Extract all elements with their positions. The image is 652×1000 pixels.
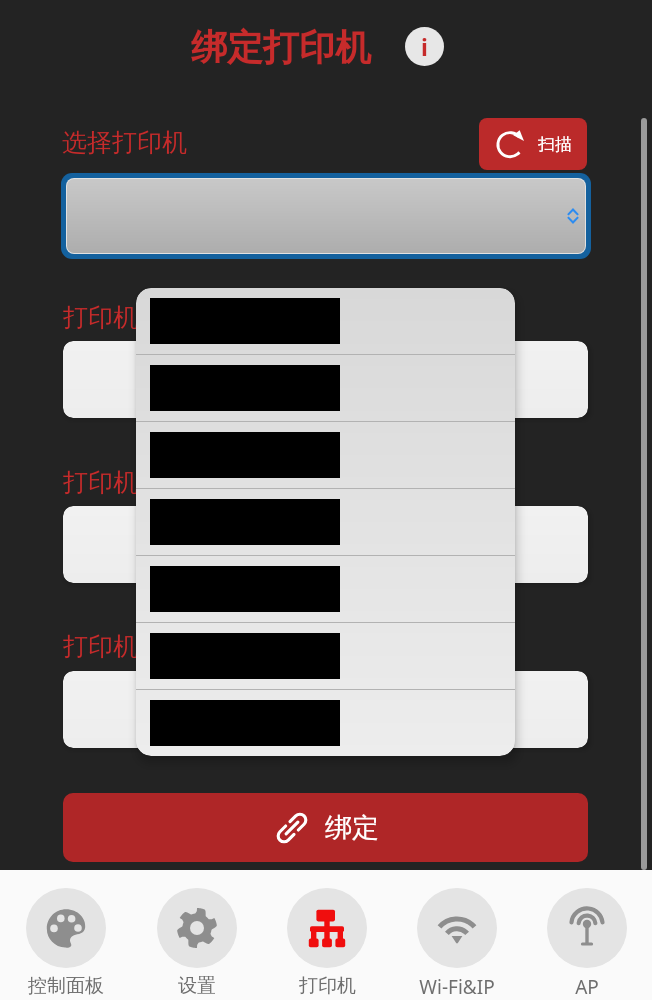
button[interactable]: [63, 506, 588, 583]
button[interactable]: [136, 556, 515, 623]
button[interactable]: Info: [405, 27, 444, 66]
staticText: Wi-Fi&IP: [419, 974, 495, 1000]
staticText: 打印机名称: [63, 302, 188, 333]
staticText: 绑定打印机: [191, 25, 371, 70]
staticText: 绑定: [325, 811, 379, 845]
staticText: 打印机位置: [63, 631, 188, 662]
button[interactable]: 扫描: [479, 118, 587, 170]
button[interactable]: 打印机: [262, 870, 392, 998]
button[interactable]: 控制面板: [0, 870, 131, 998]
button[interactable]: 设置: [131, 870, 262, 998]
button[interactable]: [136, 489, 515, 556]
button[interactable]: [136, 623, 515, 690]
button[interactable]: [136, 288, 515, 355]
staticText: AP: [575, 974, 599, 1000]
staticText: i: [421, 31, 428, 62]
button[interactable]: Wi-Fi&IP: [392, 870, 522, 1000]
button[interactable]: [67, 179, 585, 253]
staticText: 设置: [178, 974, 216, 998]
button[interactable]: [63, 341, 588, 418]
button[interactable]: [136, 422, 515, 489]
button[interactable]: [136, 355, 515, 422]
staticText: 控制面板: [28, 974, 104, 998]
staticText: 扫描: [538, 134, 572, 155]
button[interactable]: 绑定: [63, 793, 588, 862]
button[interactable]: [63, 671, 588, 748]
button[interactable]: [136, 690, 515, 756]
staticText: 打印机: [299, 974, 356, 998]
button[interactable]: AP: [522, 870, 652, 1000]
staticText: 选择打印机: [62, 127, 187, 158]
staticText: 打印机型号: [63, 467, 188, 498]
